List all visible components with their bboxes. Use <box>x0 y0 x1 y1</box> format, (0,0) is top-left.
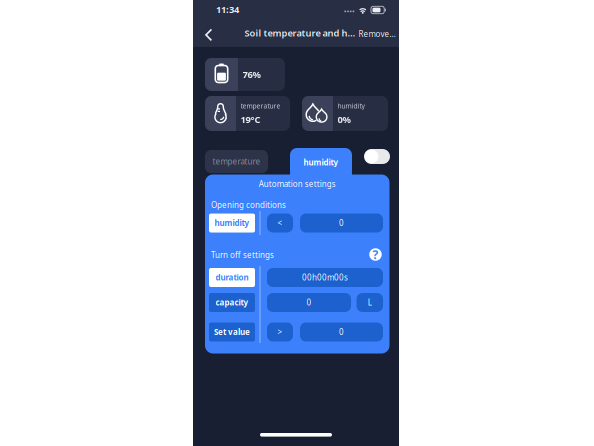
button[interactable]: Back <box>193 0 399 446</box>
button[interactable]: Help <box>193 0 399 446</box>
staticText: capacity <box>215 297 248 308</box>
staticText: Remove… <box>358 29 395 39</box>
staticText: < <box>277 218 282 228</box>
button[interactable]: Remove… <box>193 0 399 446</box>
staticText: > <box>277 327 282 337</box>
staticText: 0 <box>306 297 311 308</box>
button[interactable]: 76% <box>193 0 399 446</box>
button[interactable]: humidity <box>193 0 399 446</box>
button[interactable]: temperature <box>193 0 399 446</box>
staticText: Set value <box>214 327 250 337</box>
staticText: 76% <box>242 68 260 81</box>
button[interactable]: Enable automation <box>193 0 399 446</box>
staticText: humidity <box>303 157 338 168</box>
staticText: L <box>368 297 372 308</box>
staticText: humidity <box>214 218 249 228</box>
staticText: Automation settings <box>259 179 336 189</box>
staticText: duration <box>215 272 248 283</box>
staticText: 0 <box>339 327 344 337</box>
staticText: Turn off settings <box>211 250 274 260</box>
staticText: humidity <box>337 101 364 110</box>
staticText: 11:34 <box>216 3 239 16</box>
staticText: Opening conditions <box>211 200 286 210</box>
staticText: 00h00m00s <box>302 272 348 283</box>
staticText: 0 <box>339 218 344 228</box>
staticText: temperature <box>240 101 280 110</box>
staticText: temperature <box>212 156 260 167</box>
staticText: ? <box>372 246 378 262</box>
button[interactable]: humidity <box>193 0 399 446</box>
staticText: Soil temperature and h… <box>244 27 355 39</box>
button[interactable]: temperature <box>193 0 399 446</box>
staticText: 0% <box>337 113 350 126</box>
staticText: 19°C <box>240 113 260 126</box>
